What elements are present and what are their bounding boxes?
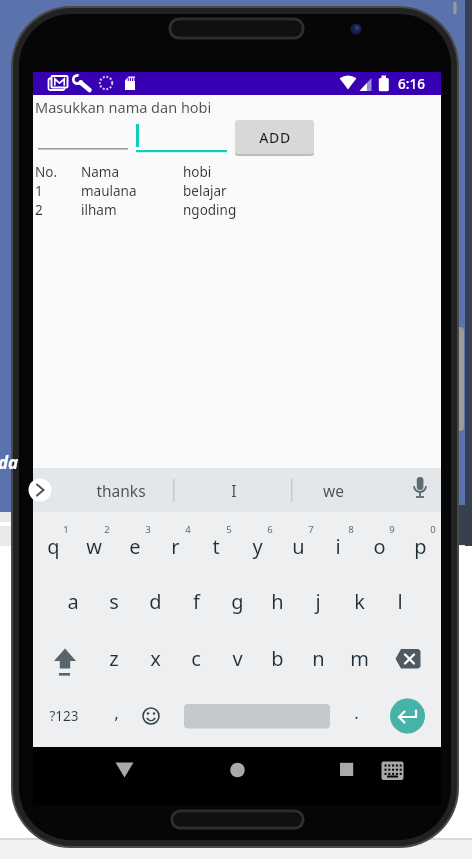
button[interactable]: we [293, 470, 373, 510]
staticText: maulana [81, 182, 137, 200]
staticText: ilham [81, 201, 117, 219]
staticText: z [109, 645, 119, 672]
staticText: b [271, 645, 284, 672]
button[interactable] [29, 478, 53, 502]
staticText: hobi [183, 163, 212, 181]
staticText: 6:16 [398, 75, 425, 93]
button[interactable]: z [94, 632, 134, 684]
staticText: Nama [81, 163, 120, 181]
button[interactable]: h [257, 575, 297, 627]
button[interactable]: q [33, 520, 73, 572]
staticText: 7 [308, 523, 314, 536]
staticText: u [292, 533, 305, 560]
staticText: r [171, 533, 180, 560]
button[interactable] [333, 757, 361, 783]
staticText: d [149, 588, 162, 615]
staticText: m [350, 645, 369, 672]
button[interactable] [184, 704, 330, 729]
button[interactable]: s [94, 575, 134, 627]
staticText: thanks [96, 480, 146, 501]
staticText: 0 [430, 523, 436, 536]
button[interactable]: e [115, 520, 155, 572]
staticText: 3 [145, 523, 151, 536]
button[interactable] [389, 698, 425, 734]
staticText: q [47, 533, 60, 560]
staticText: g [231, 588, 244, 615]
button[interactable]: c [176, 632, 216, 684]
staticText: ?123 [49, 707, 79, 725]
staticText: we [323, 480, 344, 501]
button[interactable]: i [318, 520, 358, 572]
staticText: 1 [35, 182, 43, 200]
staticText: n [312, 645, 325, 672]
staticText: 1 [63, 523, 69, 536]
staticText: k [354, 588, 365, 615]
staticText: y [252, 533, 263, 560]
staticText: h [271, 588, 284, 615]
button[interactable] [378, 757, 406, 783]
button[interactable] [223, 757, 253, 783]
button[interactable]: j [298, 575, 338, 627]
staticText: x [150, 645, 161, 672]
staticText: l [397, 588, 403, 615]
staticText: 8 [348, 523, 354, 536]
button[interactable]: ADD [235, 120, 314, 154]
staticText: 5 [226, 523, 232, 536]
staticText: j [315, 588, 321, 615]
button[interactable]: f [176, 575, 216, 627]
staticText: Masukkan nama dan hobi [35, 97, 212, 117]
staticText: 2 [35, 201, 43, 219]
staticText: da [0, 451, 19, 474]
button[interactable]: I [194, 470, 274, 510]
staticText: p [414, 533, 427, 560]
button[interactable]: m [339, 632, 379, 684]
button[interactable]: y [237, 520, 277, 572]
button[interactable]: x [135, 632, 175, 684]
staticText: s [109, 588, 119, 615]
button[interactable]: o [359, 520, 399, 572]
staticText: a [67, 588, 79, 615]
button[interactable] [38, 120, 128, 152]
staticText: No. [35, 163, 58, 181]
staticText: 6 [267, 523, 273, 536]
button[interactable]: t [196, 520, 236, 572]
staticText: c [191, 645, 201, 672]
button[interactable] [408, 476, 432, 500]
button[interactable]: thanks [79, 470, 163, 510]
button[interactable]: a [53, 575, 93, 627]
button[interactable]: d [135, 575, 175, 627]
button[interactable]: g [217, 575, 257, 627]
button[interactable]: . [341, 687, 371, 737]
staticText: f [193, 588, 200, 615]
button[interactable]: , [101, 687, 131, 737]
staticText: 9 [389, 523, 395, 536]
staticText: o [373, 533, 386, 560]
staticText: ADD [259, 128, 291, 147]
button[interactable] [110, 757, 140, 783]
button[interactable]: p [400, 520, 440, 572]
staticText: . [354, 701, 359, 724]
staticText: 2 [104, 523, 110, 536]
button[interactable]: k [339, 575, 379, 627]
button[interactable]: ?123 [38, 691, 90, 741]
button[interactable]: l [380, 575, 420, 627]
button[interactable]: b [257, 632, 297, 684]
button[interactable] [137, 692, 165, 740]
button[interactable]: u [278, 520, 318, 572]
staticText: w [86, 533, 102, 560]
staticText: v [232, 645, 243, 672]
button[interactable]: r [155, 520, 195, 572]
button[interactable]: w [74, 520, 114, 572]
staticText: I [231, 480, 237, 501]
staticText: ngoding [183, 201, 237, 219]
button[interactable]: v [217, 632, 257, 684]
staticText: , [114, 701, 119, 724]
button[interactable] [136, 120, 227, 154]
staticText: e [129, 533, 141, 560]
button[interactable] [44, 632, 84, 684]
button[interactable] [387, 632, 431, 684]
staticText: belajar [183, 182, 227, 200]
button[interactable]: n [298, 632, 338, 684]
staticText: 4 [185, 523, 191, 536]
staticText: i [335, 533, 341, 560]
